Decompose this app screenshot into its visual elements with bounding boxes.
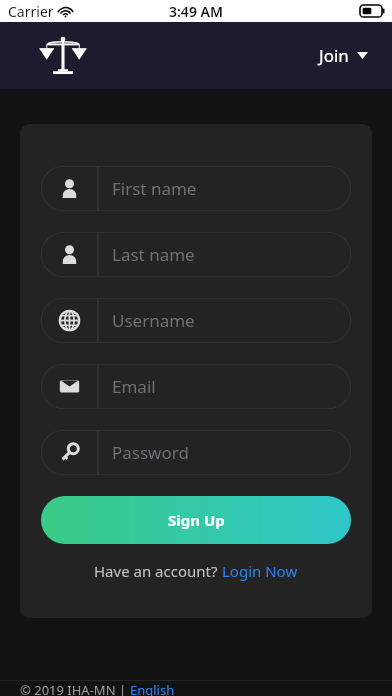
button[interactable]: Email bbox=[41, 364, 351, 409]
staticText: 3:49 AM bbox=[169, 2, 223, 21]
staticText: Join bbox=[319, 44, 349, 67]
staticText: Last name bbox=[112, 243, 195, 266]
button[interactable]: Login Now bbox=[222, 561, 298, 581]
staticText: Email bbox=[112, 375, 156, 398]
staticText: Password bbox=[112, 441, 189, 464]
button[interactable]: First name bbox=[41, 166, 351, 211]
button[interactable]: English bbox=[130, 681, 175, 696]
staticText: First name bbox=[112, 177, 197, 200]
staticText: © 2019 IHA-MN | bbox=[20, 681, 130, 696]
button[interactable]: Username bbox=[41, 298, 351, 343]
button[interactable]: Sign Up bbox=[41, 496, 351, 544]
staticText: English bbox=[130, 681, 175, 696]
button[interactable]: Join bbox=[315, 38, 372, 73]
staticText: Carrier bbox=[8, 2, 54, 21]
staticText: Sign Up bbox=[168, 510, 225, 530]
staticText: Username bbox=[112, 309, 195, 332]
button[interactable]: Password bbox=[41, 430, 351, 475]
staticText: Have an account? bbox=[94, 561, 222, 581]
button[interactable]: Last name bbox=[41, 232, 351, 277]
button[interactable]: Home bbox=[40, 33, 86, 79]
staticText: Login Now bbox=[222, 561, 298, 581]
